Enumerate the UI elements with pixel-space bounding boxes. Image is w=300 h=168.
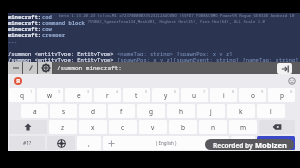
button[interactable]: y [152,88,179,102]
staticText: j [210,107,212,116]
staticText: Mobizen [255,140,287,150]
button[interactable]: l [257,104,285,118]
staticText: <nameTag: string> [spawnPos: x y z] [117,50,233,56]
button[interactable]: n [199,120,227,134]
staticText: minecraft: [8,13,42,19]
button[interactable]: w [37,88,63,102]
staticText: cow [42,25,52,31]
button[interactable]: u [181,88,208,102]
staticText: cod [42,13,52,19]
staticText: 3 [87,89,90,94]
staticText: Recorded by [213,141,255,150]
staticText: a [33,107,37,116]
button[interactable]: v [139,120,167,134]
button[interactable]: , [77,136,101,150]
staticText: Я [16,77,21,85]
staticText: 2 [58,89,61,94]
button[interactable]: Keyboard menu [14,77,22,85]
button[interactable]: Space [103,136,229,150]
button[interactable]: Enter [257,136,295,150]
button[interactable]: o [239,88,266,102]
staticText: minecraft: [8,19,42,25]
staticText: u [192,91,197,100]
staticText: w [47,91,53,100]
staticText: beta 1.13.20.23 (c)=e+M1 x723700000X3523… [52,13,295,18]
button[interactable]: k [227,104,255,118]
button[interactable]: Language [47,136,75,150]
button[interactable]: g [137,104,165,118]
staticText: minecraft: [8,31,42,37]
staticText: g [149,107,153,116]
staticText: b [181,123,185,132]
staticText: 7590AC,5gmserTexa134,Mesh201, Highest He… [85,19,265,24]
staticText: t [135,91,138,100]
staticText: e [77,91,81,100]
staticText: [spawnPos: x y z][spawnEvent: string] [n… [117,56,299,62]
button[interactable]: z [49,120,77,134]
staticText: 6 [174,89,177,94]
staticText: n [211,123,216,132]
button[interactable]: x [79,120,107,134]
button[interactable]: #1? [9,136,45,150]
staticText: 5 [145,89,148,94]
button[interactable]: Send [277,63,292,74]
staticText: 4 [116,89,119,94]
staticText: d [91,107,95,116]
staticText: f [120,107,123,116]
button[interactable]: Emoji [287,76,296,85]
button[interactable]: p [268,88,295,102]
staticText: o [251,91,255,100]
button[interactable]: i [210,88,237,102]
button[interactable]: Backspace [259,120,295,134]
staticText: , [88,139,90,148]
staticText: /summon <entityType: EntityType> [8,56,117,62]
staticText: s [62,107,66,116]
staticText: ( English ) [156,140,177,146]
button[interactable]: b [169,120,197,134]
staticText: m [240,123,247,132]
staticText: c [121,123,125,132]
staticText: /summon <entityType: EntityType> [8,50,117,56]
staticText: 0 [290,89,293,94]
staticText: p [280,91,284,100]
staticText: l [270,107,272,116]
button[interactable]: Settings [38,62,53,74]
staticText: y [164,91,168,100]
staticText: --- [8,39,18,46]
staticText: i [223,91,225,100]
button[interactable]: a [21,104,48,118]
staticText: 1 [30,89,33,94]
button[interactable]: Slash [23,62,38,74]
staticText: k [239,107,243,116]
staticText: #1? [23,140,32,147]
staticText: 9 [261,89,264,94]
button[interactable]: j [197,104,225,118]
staticText: minecraft: [8,25,42,31]
staticText: . [242,139,244,148]
button[interactable]: h [167,104,195,118]
button[interactable]: Insert [8,62,23,74]
button[interactable]: q [9,88,35,102]
staticText: creeper [42,31,66,37]
button[interactable]: c [109,120,137,134]
button[interactable]: r [94,88,121,102]
staticText: 8 [232,89,235,94]
staticText: 7 [203,89,206,94]
staticText: z [61,123,65,132]
staticText: v [151,123,155,132]
staticText: r [106,91,109,100]
button[interactable]: e [65,88,92,102]
button[interactable]: s [50,104,77,118]
button[interactable]: d [79,104,106,118]
button[interactable]: m [229,120,257,134]
button[interactable]: Shift [9,120,47,134]
staticText: h [179,107,184,116]
staticText: q [20,91,24,100]
staticText: command_block [42,19,85,25]
staticText: /summon minecraft: [57,64,122,72]
button[interactable]: t [123,88,150,102]
button[interactable]: . [231,136,255,150]
staticText: x [91,123,95,132]
button[interactable]: f [108,104,135,118]
